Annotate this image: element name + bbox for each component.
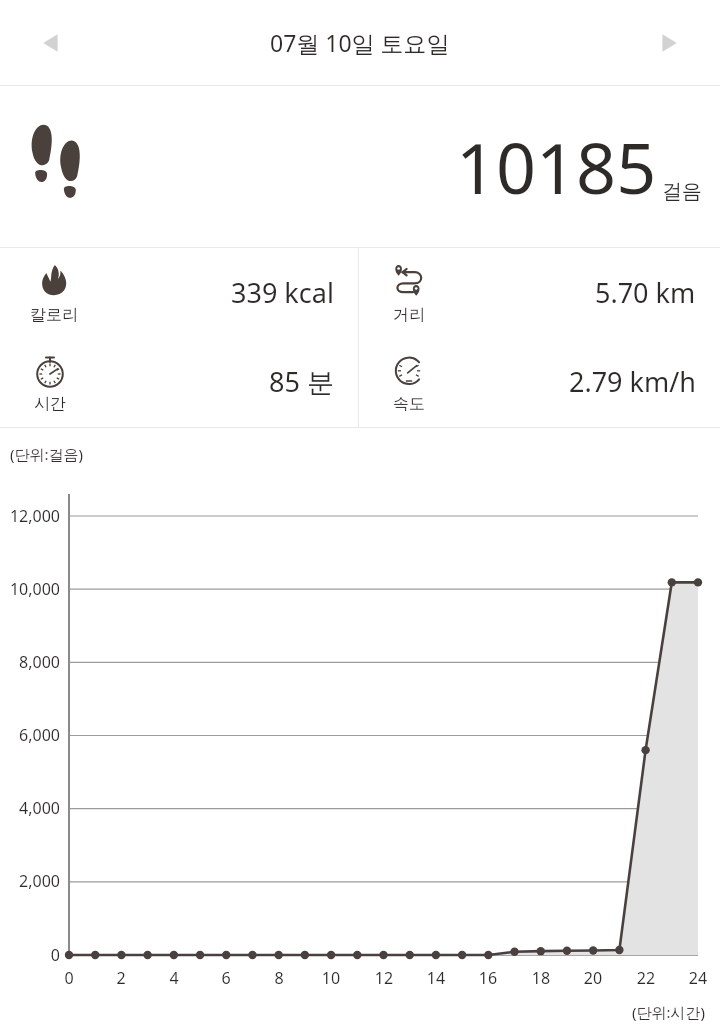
staticText: 16	[468, 967, 508, 989]
staticText: 6	[206, 967, 246, 989]
button[interactable]: Previous day	[32, 23, 72, 63]
staticText: 24	[678, 967, 718, 989]
staticText: 걸음	[662, 179, 702, 204]
staticText: (단위:시간)	[632, 1002, 706, 1022]
button[interactable]: Next day	[648, 23, 688, 63]
button[interactable]: 시간	[0, 337, 358, 426]
staticText: 18	[521, 967, 561, 989]
staticText: 시간	[34, 394, 66, 414]
staticText: 22	[626, 967, 666, 989]
other: Steps	[24, 117, 94, 205]
staticText: 339 kcal	[231, 274, 334, 311]
staticText: 14	[416, 967, 456, 989]
staticText: 0	[49, 967, 89, 989]
button[interactable]: 속도	[359, 337, 720, 426]
staticText: 0	[0, 944, 60, 966]
staticText: 4	[154, 967, 194, 989]
staticText: 10	[311, 967, 351, 989]
staticText: 칼로리	[30, 305, 78, 325]
staticText: 10185	[456, 119, 657, 214]
staticText: (단위:걸음)	[10, 444, 84, 464]
staticText: 07월 10일 토요일	[270, 27, 450, 58]
button[interactable]: 거리	[359, 248, 720, 337]
staticText: 2.79 km/h	[569, 363, 696, 400]
button[interactable]: Steps	[0, 86, 720, 247]
button[interactable]: 칼로리	[0, 248, 358, 337]
staticText: 20	[573, 967, 613, 989]
button[interactable]: 07월 10일 토요일	[264, 21, 456, 64]
staticText: 2	[101, 967, 141, 989]
staticText: 4,000	[0, 797, 60, 819]
staticText: 10,000	[0, 578, 60, 600]
staticText: 속도	[393, 394, 425, 414]
staticText: 12,000	[0, 505, 60, 527]
staticText: 12	[364, 967, 404, 989]
staticText: 거리	[393, 305, 425, 325]
staticText: 8,000	[0, 651, 60, 673]
staticText: 5.70 km	[595, 274, 696, 311]
staticText: 85 분	[269, 363, 334, 400]
staticText: 6,000	[0, 724, 60, 746]
staticText: 2,000	[0, 870, 60, 892]
staticText: 8	[259, 967, 299, 989]
